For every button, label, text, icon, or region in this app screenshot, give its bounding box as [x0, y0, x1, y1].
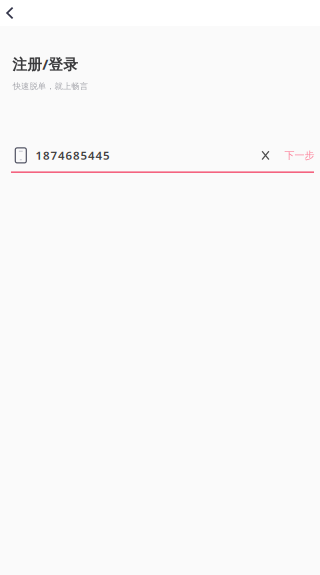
- staticText: 下一步: [284, 149, 314, 162]
- button[interactable]: 下一步: [284, 145, 314, 165]
- staticText: 注册/登录: [12, 54, 78, 74]
- button[interactable]: Clear: [253, 145, 277, 165]
- staticText: 快速脱单，就上畅言: [13, 81, 88, 91]
- staticText: 1874685445: [35, 148, 110, 163]
- button[interactable]: Back: [0, 0, 26, 26]
